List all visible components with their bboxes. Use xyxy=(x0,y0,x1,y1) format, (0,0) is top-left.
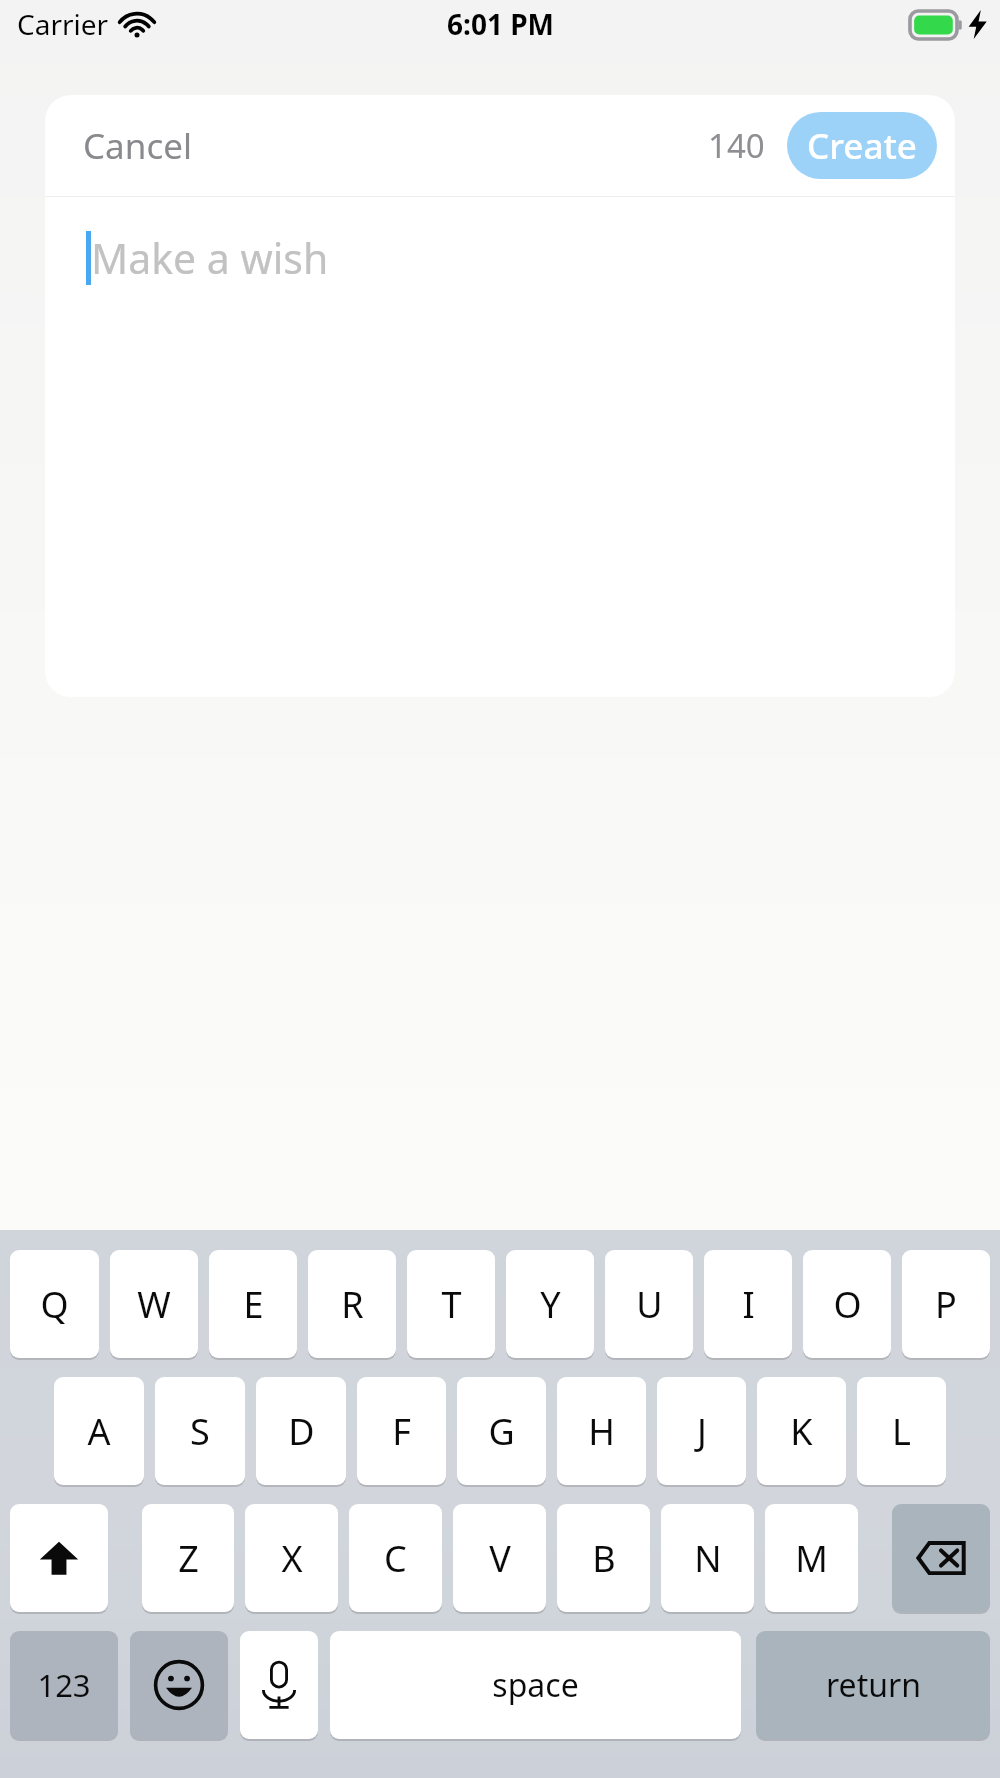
staticText: Carrier xyxy=(17,5,109,43)
button[interactable]: L xyxy=(857,1377,946,1485)
staticText: B xyxy=(592,1534,616,1583)
staticText: Cancel xyxy=(83,122,192,170)
button[interactable]: P xyxy=(902,1250,990,1358)
button[interactable]: E xyxy=(209,1250,297,1358)
staticText: 123 xyxy=(37,1664,91,1706)
button[interactable]: Dictation xyxy=(240,1631,318,1739)
staticText: U xyxy=(636,1280,663,1329)
staticText: Y xyxy=(540,1280,561,1329)
staticText: space xyxy=(492,1663,579,1707)
button[interactable]: space xyxy=(330,1631,741,1739)
button[interactable]: O xyxy=(803,1250,891,1358)
button[interactable]: G xyxy=(457,1377,546,1485)
staticText: return xyxy=(826,1663,921,1707)
staticText: M xyxy=(795,1534,828,1583)
button[interactable]: Q xyxy=(10,1250,99,1358)
button[interactable]: return xyxy=(756,1631,990,1739)
button[interactable]: M xyxy=(765,1504,858,1612)
button[interactable]: Emoji xyxy=(130,1631,228,1739)
staticText: A xyxy=(87,1407,111,1456)
button[interactable]: S xyxy=(155,1377,245,1485)
button[interactable]: H xyxy=(557,1377,646,1485)
staticText: R xyxy=(341,1280,364,1329)
button[interactable]: 123 xyxy=(10,1631,118,1739)
staticText: K xyxy=(790,1407,813,1456)
button[interactable]: T xyxy=(407,1250,495,1358)
button[interactable]: C xyxy=(349,1504,442,1612)
button[interactable]: Z xyxy=(142,1504,234,1612)
staticText: L xyxy=(892,1407,911,1456)
staticText: Create xyxy=(807,122,917,170)
button[interactable]: U xyxy=(605,1250,693,1358)
staticText: P xyxy=(935,1280,957,1329)
button[interactable]: Backspace xyxy=(892,1504,990,1612)
staticText: Q xyxy=(40,1280,69,1329)
button[interactable]: W xyxy=(110,1250,198,1358)
button[interactable]: X xyxy=(245,1504,338,1612)
staticText: X xyxy=(281,1534,303,1583)
button[interactable]: Create xyxy=(787,112,937,179)
button[interactable]: V xyxy=(453,1504,546,1612)
staticText: T xyxy=(441,1280,462,1329)
staticText: Make a wish xyxy=(91,230,329,286)
staticText: D xyxy=(288,1407,315,1456)
staticText: G xyxy=(488,1407,515,1456)
staticText: W xyxy=(137,1280,171,1329)
button[interactable]: Shift xyxy=(10,1504,108,1612)
button[interactable]: A xyxy=(54,1377,144,1485)
staticText: J xyxy=(697,1407,707,1456)
staticText: 6:01 PM xyxy=(447,5,554,43)
button[interactable]: Y xyxy=(506,1250,594,1358)
staticText: 140 xyxy=(708,123,765,168)
button[interactable]: B xyxy=(557,1504,650,1612)
button[interactable]: J xyxy=(657,1377,746,1485)
staticText: F xyxy=(392,1407,411,1456)
staticText: Z xyxy=(178,1534,199,1583)
button[interactable]: K xyxy=(757,1377,846,1485)
staticText: H xyxy=(588,1407,615,1456)
button[interactable]: I xyxy=(704,1250,792,1358)
button[interactable]: N xyxy=(661,1504,754,1612)
button[interactable]: F xyxy=(357,1377,446,1485)
staticText: V xyxy=(489,1534,511,1583)
staticText: S xyxy=(190,1407,210,1456)
staticText: E xyxy=(243,1280,264,1329)
button[interactable]: Make a wish xyxy=(45,197,955,697)
button[interactable]: D xyxy=(256,1377,346,1485)
staticText: I xyxy=(742,1280,755,1329)
button[interactable]: R xyxy=(308,1250,396,1358)
staticText: N xyxy=(694,1534,722,1583)
staticText: O xyxy=(833,1280,862,1329)
button[interactable]: Cancel xyxy=(77,114,198,178)
staticText: C xyxy=(384,1534,407,1583)
